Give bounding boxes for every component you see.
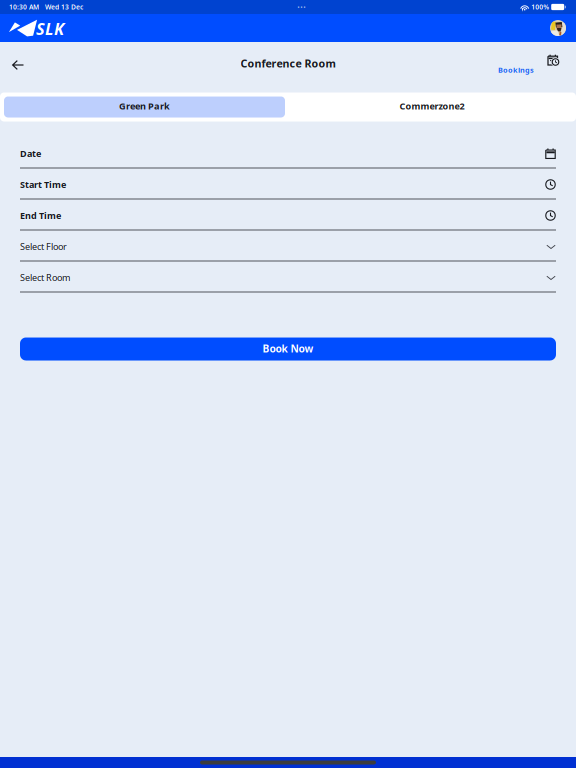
button[interactable]: Bookings [498, 54, 560, 86]
staticText: Conference Room [240, 56, 335, 70]
staticText: Green Park [119, 100, 170, 112]
button[interactable]: Date [20, 137, 556, 168]
staticText: 100% [529, 2, 551, 12]
staticText: Date [20, 147, 41, 160]
button[interactable]: Book Now [20, 337, 556, 360]
staticText: • • • [298, 3, 306, 11]
button[interactable]: Select Room [20, 261, 556, 292]
staticText: Wed 13 Dec [39, 2, 83, 12]
button[interactable]: Profile [550, 20, 566, 36]
staticText: Select Room [20, 271, 70, 284]
button[interactable]: End Time [20, 199, 556, 230]
staticText: 10:30 AM [9, 2, 39, 12]
button[interactable]: Green Park [4, 96, 285, 117]
button[interactable]: Commerzone2 [292, 96, 572, 117]
staticText: Commerzone2 [399, 100, 464, 112]
staticText: Start Time [20, 178, 66, 191]
button[interactable]: Back [5, 55, 31, 75]
staticText: SLK [36, 17, 64, 40]
staticText: End Time [20, 209, 61, 222]
staticText: Select Floor [20, 240, 67, 253]
button[interactable]: Start Time [20, 168, 556, 199]
staticText: Bookings [498, 65, 534, 75]
button[interactable]: Select Floor [20, 230, 556, 261]
staticText: Book Now [262, 341, 313, 355]
